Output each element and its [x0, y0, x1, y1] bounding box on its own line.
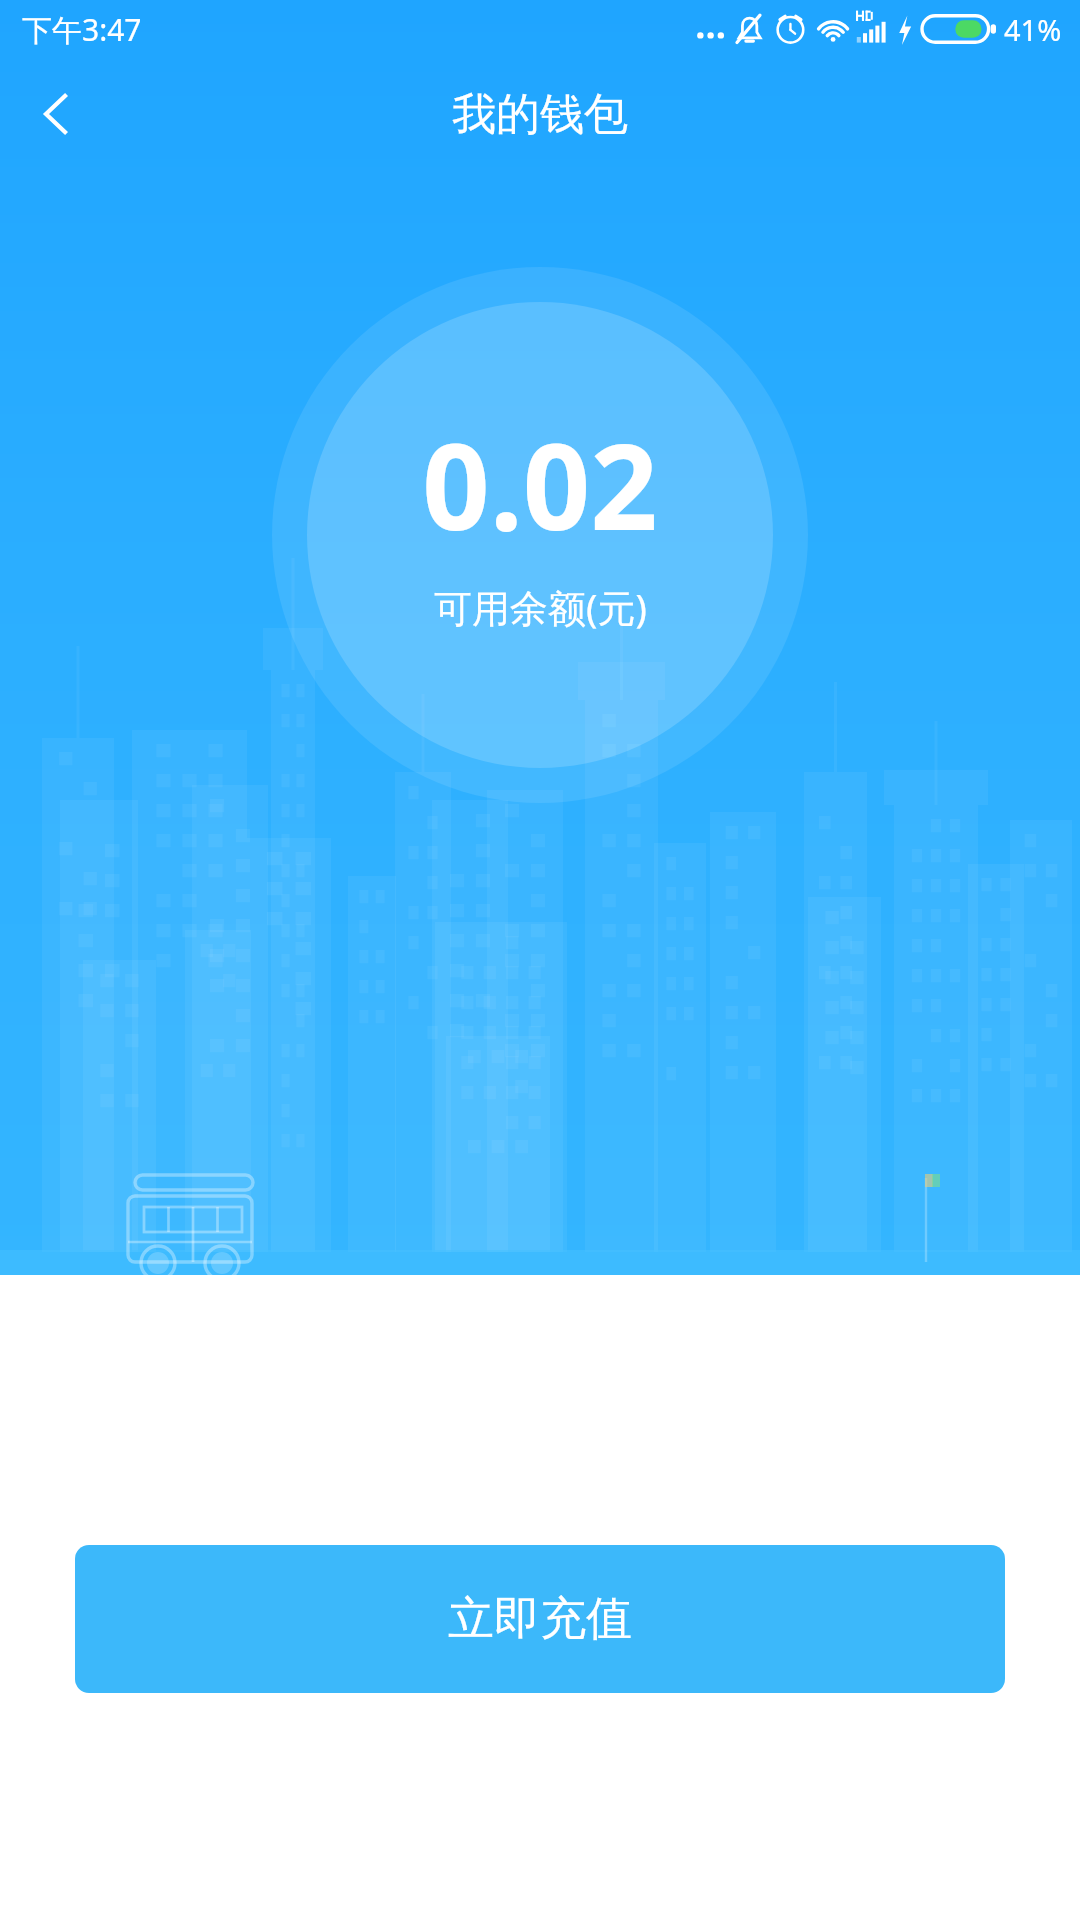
staticText: 可用余额(元) — [434, 581, 647, 633]
staticText: 下午3:47 — [22, 9, 142, 50]
button[interactable]: 立即充值 — [75, 1545, 1005, 1693]
staticText: 0.02 — [422, 404, 658, 565]
button[interactable]: Back — [0, 58, 112, 170]
staticText: 41% — [1004, 10, 1062, 49]
staticText: 我的钱包 — [452, 87, 628, 142]
staticText: 立即充值 — [448, 1590, 632, 1648]
